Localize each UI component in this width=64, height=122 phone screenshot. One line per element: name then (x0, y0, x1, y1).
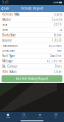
staticText: Mileage (2, 59, 13, 63)
staticText: Gasoline (50, 54, 62, 58)
button[interactable]: Back (0, 5, 10, 12)
staticText: Automatic (49, 44, 62, 47)
button[interactable]: Search (16, 112, 32, 119)
staticText: Vehicle Make (2, 13, 20, 16)
button[interactable]: Home (0, 112, 16, 119)
button[interactable]: Saved (32, 112, 48, 119)
button[interactable]: Get Full History Report (2, 75, 62, 82)
staticText: Vehicle Report (21, 7, 43, 10)
button[interactable]: Ext. Colour (0, 64, 64, 69)
button[interactable]: Fuel Type (0, 54, 64, 59)
staticText: Drivetrain (2, 49, 15, 53)
button[interactable]: Drivetrain (0, 48, 64, 54)
staticText: 42,180 mi (47, 59, 62, 63)
staticText: Title Status (2, 70, 16, 73)
staticText: Engine (2, 39, 12, 42)
staticText: Get Full History Report (16, 77, 48, 80)
staticText: 2019 (54, 23, 62, 27)
staticText: 1.8L I4 (52, 39, 62, 42)
button[interactable]: Body Style (0, 33, 64, 38)
staticText: Corolla (52, 18, 62, 21)
staticText: Toyota (54, 13, 62, 16)
staticText: LE (60, 28, 62, 32)
button[interactable]: More (48, 112, 64, 119)
staticText: Clean (54, 70, 62, 73)
staticText: Year (2, 23, 7, 27)
button[interactable]: Trim (0, 28, 64, 33)
staticText: Body Style (2, 33, 16, 37)
staticText: Sedan (54, 33, 62, 37)
staticText: Silver (55, 65, 62, 68)
staticText: Ext. Colour (2, 65, 17, 68)
button[interactable]: Engine (0, 38, 64, 43)
button[interactable]: Year (0, 22, 64, 28)
button[interactable]: Vehicle Make (0, 12, 64, 17)
staticText: Model (2, 18, 11, 21)
button[interactable]: Transmission (0, 43, 64, 48)
button[interactable]: Mileage (0, 59, 64, 64)
staticText: Back (3, 7, 8, 10)
staticText: More (54, 117, 58, 118)
staticText: 9:41 (2, 1, 9, 4)
staticText: Search (21, 117, 27, 118)
button[interactable]: Model (0, 17, 64, 22)
button[interactable]: Title Status (0, 69, 64, 74)
staticText: Home (6, 117, 10, 118)
staticText: Fuel Type (2, 54, 15, 58)
staticText: FWD (57, 49, 62, 53)
staticText: Trim (2, 28, 7, 32)
staticText: Transmission (2, 44, 18, 47)
